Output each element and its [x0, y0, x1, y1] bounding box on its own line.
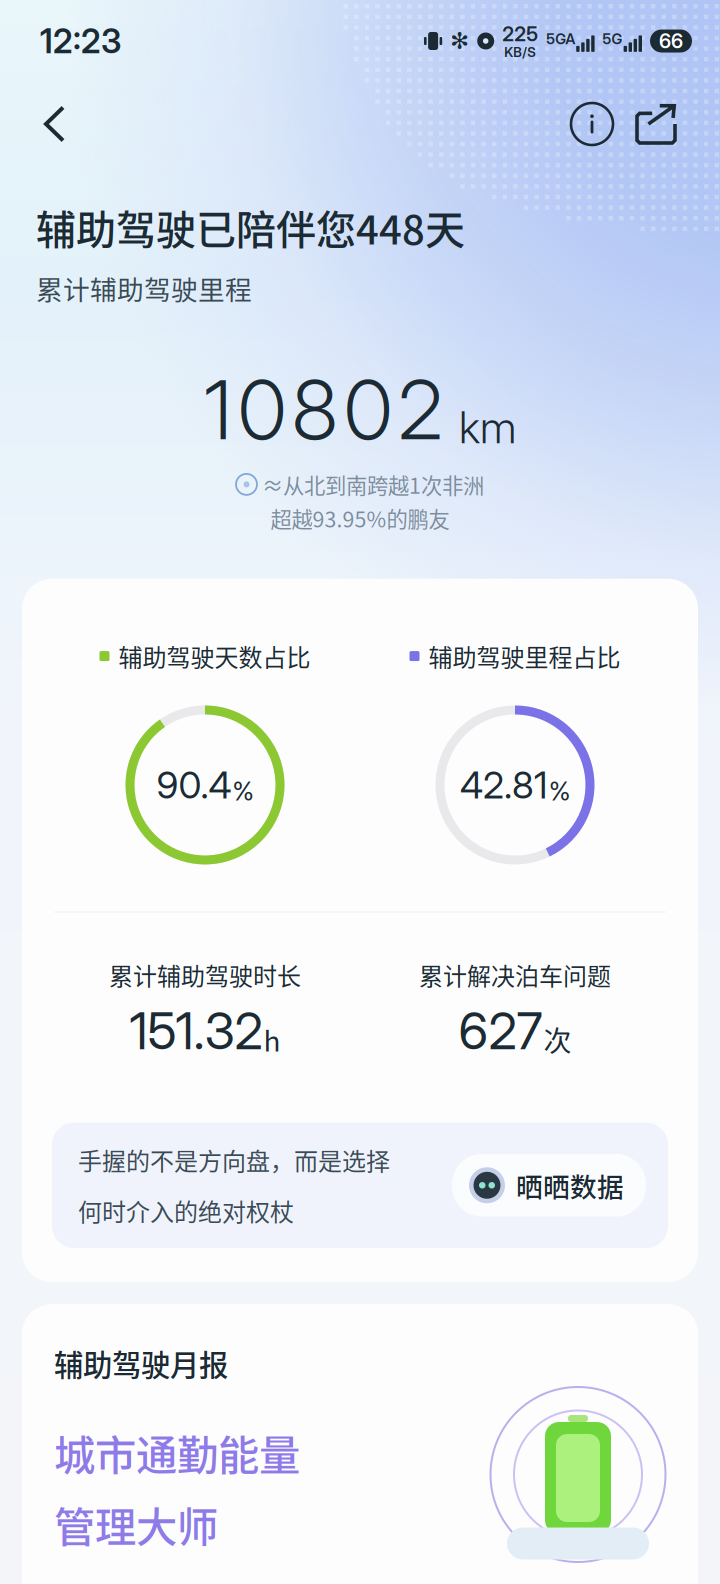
staticText: 66 — [659, 29, 683, 53]
staticText: 辅助驾驶里程占比 — [428, 639, 620, 673]
staticText: 手握的不是方向盘，而是选择 — [78, 1142, 390, 1177]
staticText: ✻ — [450, 28, 469, 54]
staticText: 管理大师 — [54, 1494, 218, 1554]
staticText: ≈从北到南跨越1次非洲 — [262, 469, 484, 500]
staticText: 累计辅助驾驶时长 — [109, 957, 301, 992]
staticText: 151.32 — [129, 1000, 262, 1061]
staticText: 次 — [543, 1019, 571, 1059]
staticText: % — [232, 776, 253, 807]
staticText: 42.81 — [460, 762, 548, 808]
staticText: h — [263, 1019, 280, 1059]
button[interactable]: Info — [560, 92, 624, 156]
staticText: 90.4 — [156, 762, 231, 808]
staticText: 5GA — [546, 30, 575, 48]
button[interactable]: 晒晒数据 — [452, 1154, 646, 1217]
staticText: 辅助驾驶月报 — [54, 1342, 228, 1384]
staticText: 晒晒数据 — [516, 1166, 624, 1205]
staticText: KB/S — [504, 44, 536, 60]
staticText: 5G — [603, 30, 623, 48]
staticText: 超越93.95%的鹏友 — [270, 503, 449, 534]
staticText: % — [549, 776, 570, 807]
staticText: 辅助驾驶天数占比 — [118, 639, 310, 673]
staticText: 12:23 — [40, 21, 121, 61]
staticText: 城市通勤能量 — [54, 1422, 300, 1482]
staticText: 10802 — [204, 360, 443, 459]
staticText: km — [459, 401, 516, 454]
staticText: 辅助驾驶已陪伴您448天 — [36, 198, 465, 256]
staticText: 225 — [502, 22, 538, 46]
staticText: 何时介入的绝对权杖 — [78, 1193, 294, 1228]
button[interactable]: Back — [24, 91, 87, 156]
staticText: 累计辅助驾驶里程 — [36, 269, 252, 307]
button[interactable]: Share — [624, 92, 688, 156]
staticText: 627 — [458, 1000, 542, 1061]
staticText: 累计解决泊车问题 — [419, 957, 611, 992]
